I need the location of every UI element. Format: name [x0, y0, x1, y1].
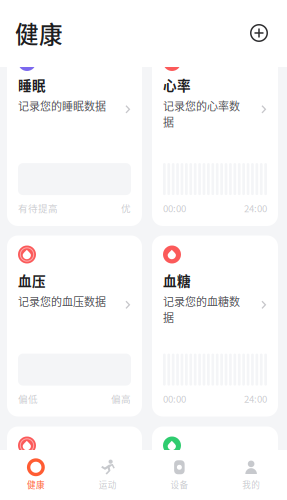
staticText: 记录您的血压数据: [18, 293, 106, 309]
button[interactable]: 我的: [215, 450, 287, 500]
staticText: 血压: [18, 270, 46, 290]
staticText: 体温: [18, 461, 46, 481]
staticText: 心率: [163, 75, 191, 95]
staticText: 设备: [170, 478, 188, 491]
staticText: 运动: [99, 478, 117, 491]
button[interactable]: 心率: [152, 43, 278, 226]
staticText: 偏高: [111, 392, 131, 405]
staticText: 我的: [242, 478, 260, 491]
staticText: 00:00: [163, 392, 186, 405]
button[interactable]: 运动: [72, 450, 144, 500]
staticText: 血糖: [163, 270, 191, 290]
staticText: 记录您的心率数据: [163, 98, 240, 130]
staticText: 记录您的血氧数据: [163, 484, 240, 500]
button[interactable]: 健康: [0, 450, 72, 500]
staticText: 健康: [15, 16, 63, 50]
button[interactable]: 睡眠: [7, 43, 142, 226]
staticText: 记录您的睡眠数据: [18, 98, 106, 114]
staticText: 记录您的体温数据: [18, 484, 106, 500]
staticText: 记录您的血糖数据: [163, 293, 240, 325]
button[interactable]: 设备: [143, 450, 215, 500]
staticText: 血氧: [163, 461, 191, 481]
staticText: 00:00: [163, 201, 186, 215]
button[interactable]: 血氧: [152, 426, 278, 500]
button[interactable]: 血糖: [152, 235, 278, 416]
button[interactable]: 添加: [246, 20, 272, 46]
staticText: 睡眠: [18, 75, 46, 95]
staticText: 24:00: [244, 392, 267, 405]
staticText: 有待提高: [18, 201, 58, 215]
staticText: 健康: [27, 478, 45, 491]
button[interactable]: 体温: [7, 426, 142, 500]
staticText: 优: [121, 201, 131, 215]
button[interactable]: 血压: [7, 235, 142, 416]
staticText: 24:00: [244, 201, 267, 215]
staticText: 偏低: [18, 392, 38, 405]
